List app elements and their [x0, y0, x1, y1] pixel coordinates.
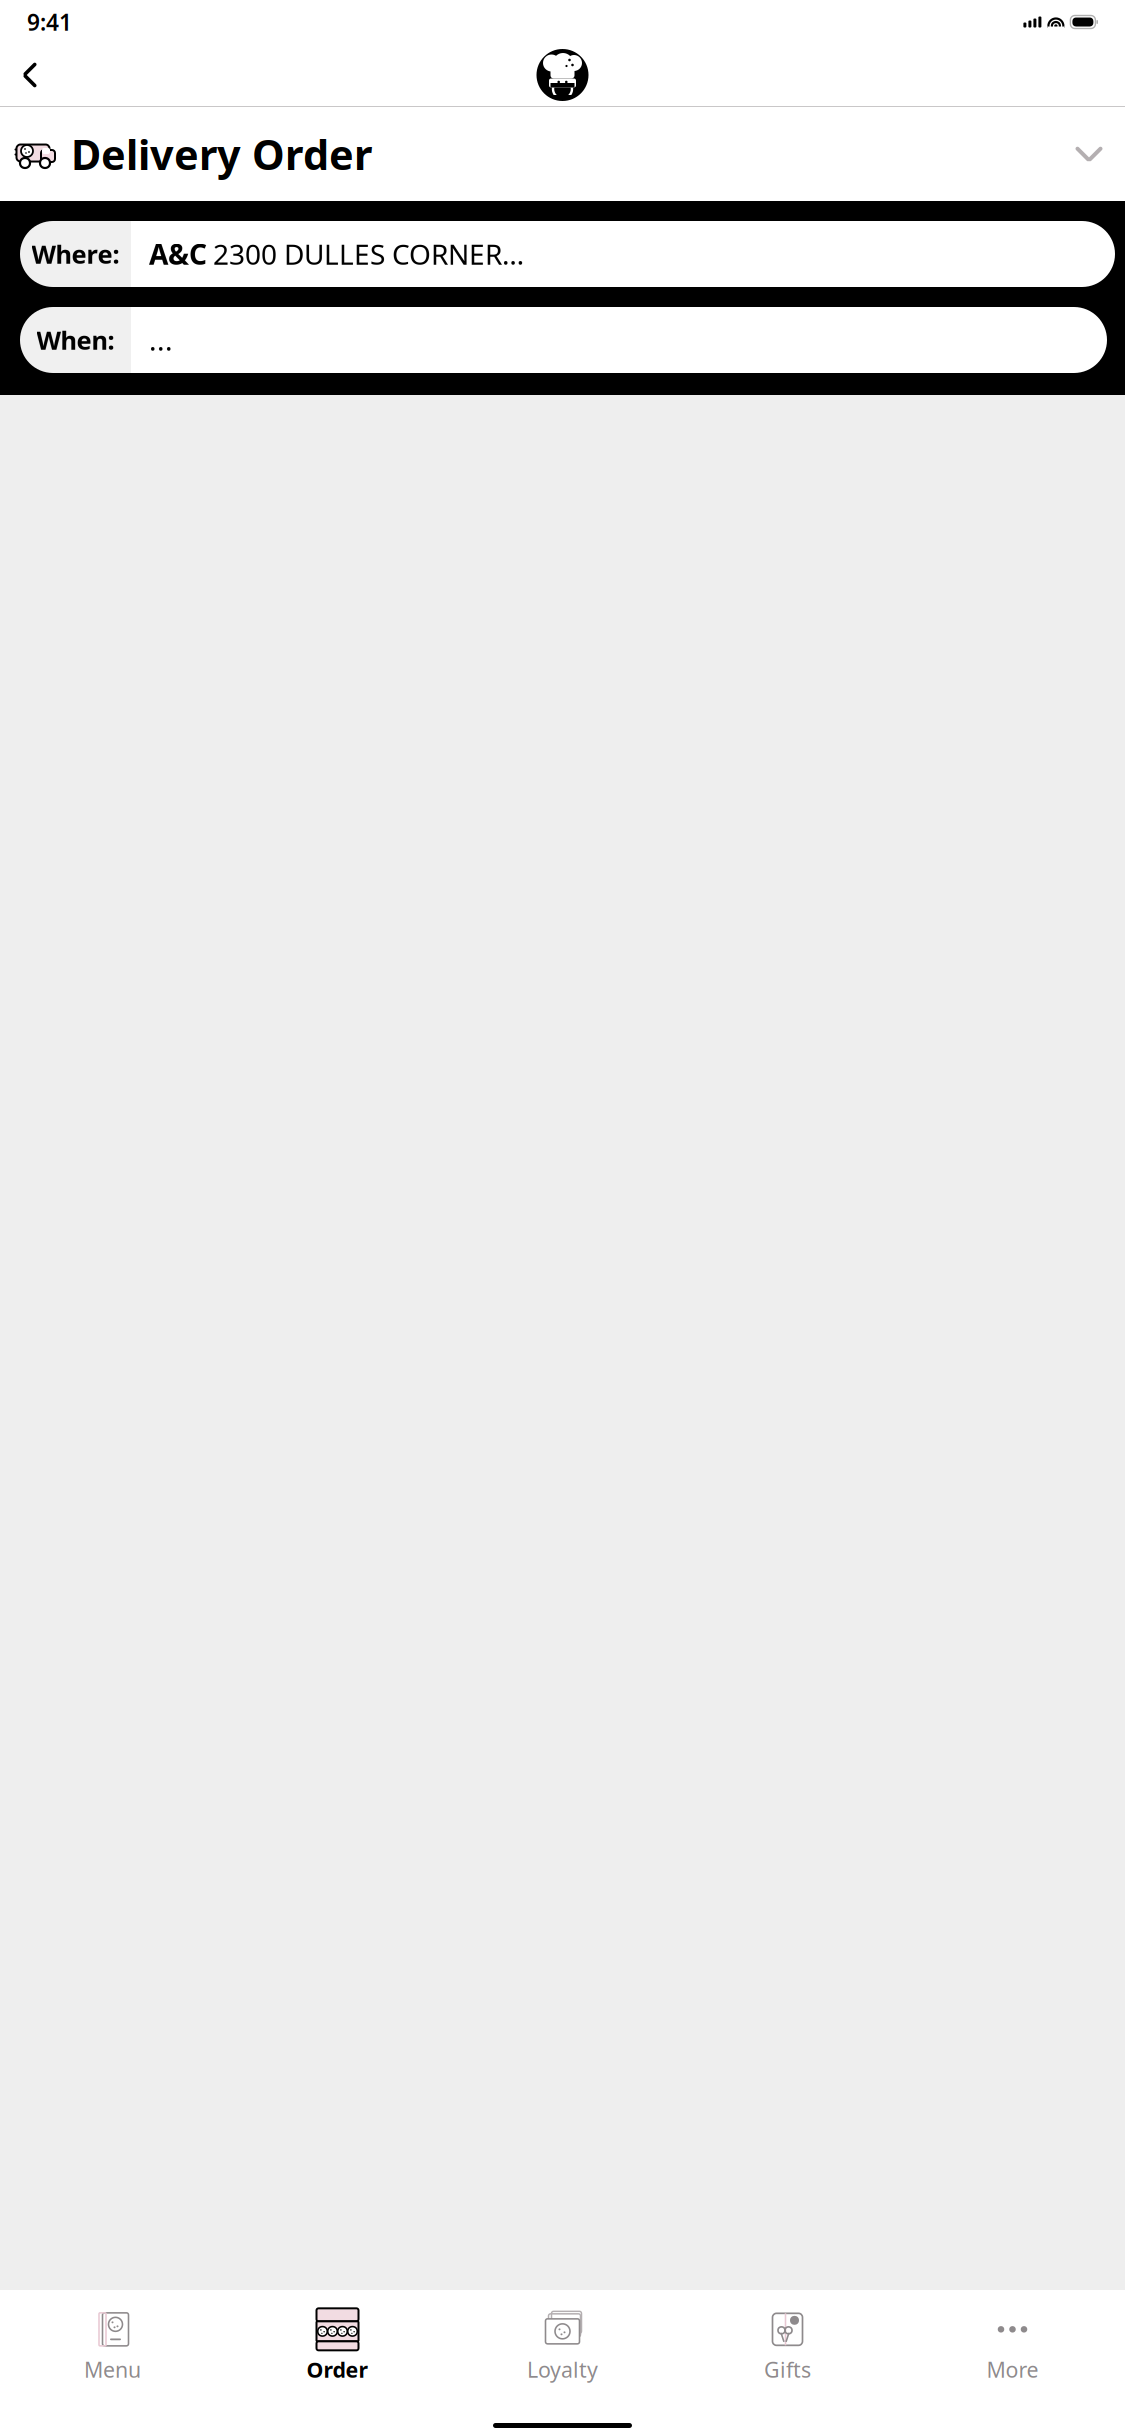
button[interactable]: Loyalty — [450, 2298, 675, 2390]
staticText: Loyalty — [527, 2355, 598, 2384]
button[interactable]: When: — [0, 307, 1125, 373]
staticText: ... — [149, 321, 173, 359]
staticText: When: — [36, 323, 114, 357]
staticText: 2300 DULLES CORNER… — [213, 235, 524, 273]
staticText: Delivery Order — [71, 127, 372, 181]
staticText: A&C — [149, 235, 207, 273]
staticText: More — [986, 2355, 1038, 2384]
button[interactable]: Gifts — [675, 2298, 900, 2390]
staticText: Order — [306, 2355, 368, 2384]
staticText: Menu — [84, 2355, 141, 2384]
button[interactable]: Back — [8, 53, 52, 97]
button[interactable]: Delivery Order — [0, 107, 1125, 201]
staticText: 9:41 — [27, 7, 72, 37]
staticText: Gifts — [764, 2355, 811, 2384]
button[interactable]: Order — [225, 2298, 450, 2390]
button[interactable]: Menu — [0, 2298, 225, 2390]
staticText: Where: — [31, 237, 119, 271]
button[interactable]: Insomnia Cookies home — [536, 49, 588, 101]
button[interactable]: More — [900, 2298, 1125, 2390]
button[interactable]: Where: — [0, 221, 1125, 287]
